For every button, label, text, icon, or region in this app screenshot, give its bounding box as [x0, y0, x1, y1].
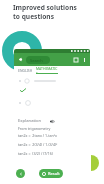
- staticText: tan2x = 2(3/4) / 1-(3/4)²: [18, 142, 58, 147]
- button[interactable]: Search: [26, 56, 50, 64]
- button[interactable]: Back: [17, 56, 24, 63]
- staticText: ENGLISH: [18, 68, 33, 73]
- button[interactable]: Previous: [16, 169, 25, 178]
- staticText: tan2x = (3/2) / (7/16): [18, 151, 53, 156]
- staticText: Explanation: [18, 118, 42, 124]
- button[interactable]: ENGLISH: [14, 66, 36, 74]
- button[interactable]: MATHEMATICS: [36, 66, 58, 74]
- staticText: Improved solutions: [13, 3, 77, 12]
- staticText: to questions: [13, 12, 54, 21]
- button[interactable]: Result: [39, 169, 63, 178]
- staticText: MATHEMATICS: [36, 66, 58, 74]
- staticText: tan2x = 2tanx / 1-tan²x: [18, 133, 57, 138]
- button[interactable]: Saved: [73, 57, 79, 63]
- button[interactable]: More options: [82, 57, 87, 62]
- staticText: Search: [30, 58, 43, 63]
- button[interactable]: Play audio: [49, 118, 55, 124]
- staticText: Result: [48, 171, 60, 176]
- staticText: From trigonometry: [18, 126, 51, 131]
